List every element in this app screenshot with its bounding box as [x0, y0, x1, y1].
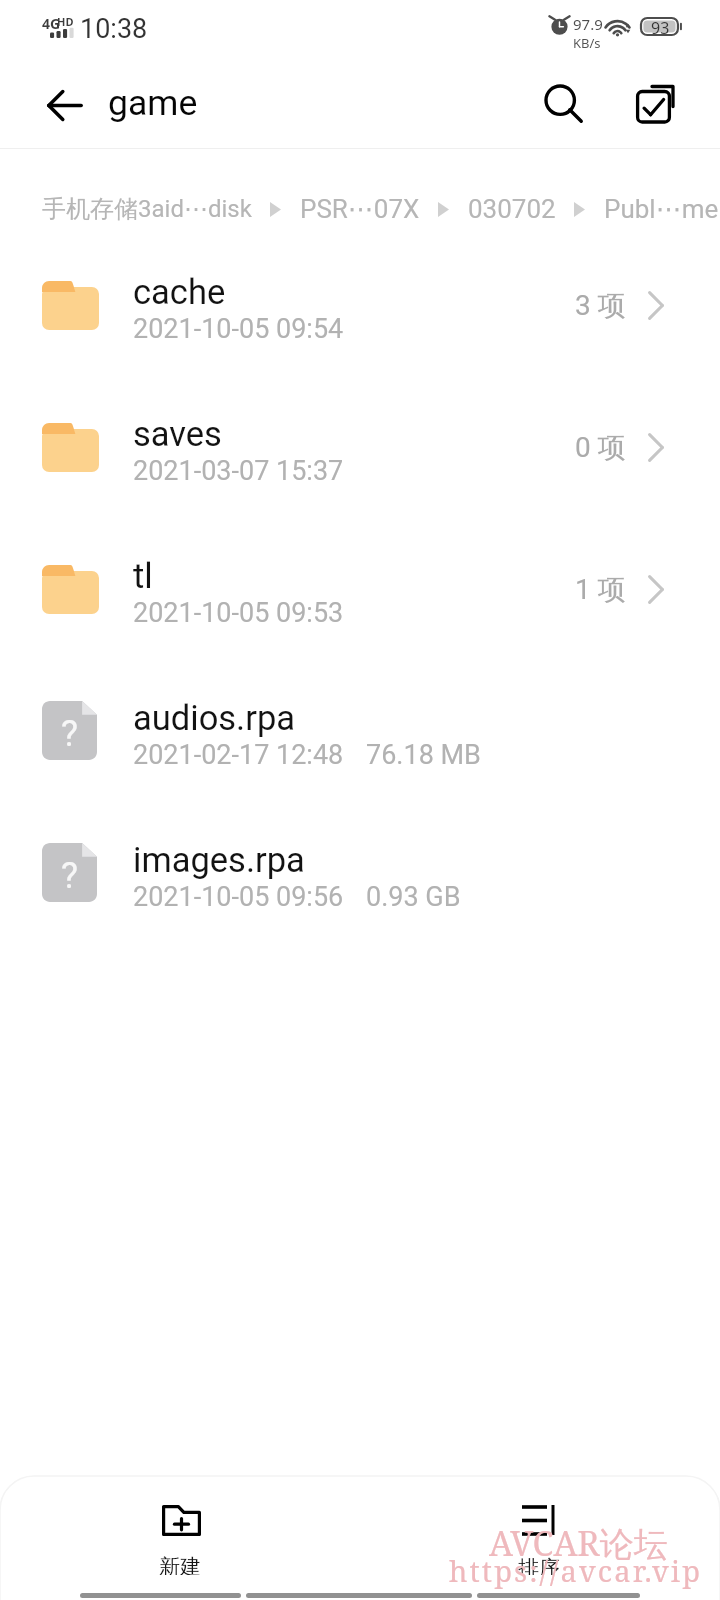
button[interactable]: 新建 [130, 1505, 230, 1575]
staticText: AVCAR论坛 [489, 1520, 668, 1566]
button[interactable]: Back [35, 75, 95, 135]
staticText: 1 项 [575, 572, 626, 607]
staticText: ? [61, 855, 79, 897]
staticText: saves [133, 414, 222, 454]
staticText: 93 [651, 17, 670, 36]
staticText: 0.93 GB [366, 881, 461, 913]
staticText: 4G [42, 14, 61, 33]
staticText: 2021-10-05 09:54 [133, 313, 344, 345]
staticText: 2021-10-05 09:53 [133, 597, 344, 629]
button[interactable]: 手机存储3aid⋯disk [42, 194, 252, 224]
staticText: 2021-03-07 15:37 [133, 455, 344, 487]
button[interactable]: 排序 [489, 1505, 589, 1575]
staticText: KB/s [573, 34, 601, 52]
staticText: 76.18 MB [366, 739, 481, 771]
staticText: audios.rpa [133, 698, 296, 738]
staticText: 0 项 [575, 430, 626, 465]
staticText: https://avcar.vip [449, 1551, 703, 1590]
button[interactable]: Select all [621, 60, 687, 126]
staticText: tl [133, 556, 153, 596]
staticText: cache [133, 272, 226, 312]
button[interactable]: tl [0, 518, 720, 660]
staticText: 新建 [159, 1554, 201, 1575]
button[interactable]: 030702 [468, 194, 556, 224]
staticText: 10:38 [80, 13, 148, 45]
staticText: ? [61, 713, 79, 755]
staticText: HD [57, 14, 74, 29]
staticText: 2021-10-05 09:56 [133, 881, 344, 913]
staticText: game [108, 82, 198, 124]
button[interactable]: Search [530, 72, 594, 136]
staticText: 3 项 [575, 288, 626, 323]
button[interactable]: ? [0, 660, 720, 802]
button[interactable]: PSR⋯07X [300, 194, 420, 224]
button[interactable]: cache [0, 234, 720, 376]
button[interactable]: Publ⋯mer [604, 194, 720, 224]
button[interactable]: saves [0, 376, 720, 518]
staticText: 排序 [518, 1555, 560, 1575]
button[interactable]: ? [0, 802, 720, 944]
staticText: 2021-02-17 12:48 [133, 739, 344, 771]
staticText: images.rpa [133, 840, 305, 880]
staticText: 97.9 [573, 14, 603, 34]
